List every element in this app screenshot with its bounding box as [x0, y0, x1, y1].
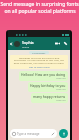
staticText: Send message in surprising fonts — [0, 1, 79, 8]
button[interactable]: Messages and calls are end-to-end encryp… — [13, 56, 65, 68]
button[interactable]: Send voice message — [59, 129, 68, 138]
button[interactable]: Video call — [55, 41, 60, 46]
staticText: 10:26 AM — [56, 99, 66, 102]
staticText: on all popular social platforms — [4, 8, 76, 15]
staticText: 14 JANUARY — [32, 51, 46, 54]
button[interactable]: Happy birthday to you — [30, 83, 66, 91]
other: Attach — [51, 132, 55, 136]
staticText: Happy birthday to you — [30, 83, 66, 88]
staticText: 10:25 AM — [56, 77, 66, 80]
staticText: Messages and calls are end-to-end encryp… — [13, 56, 65, 65]
staticText: many happy returns — [33, 94, 66, 99]
button[interactable]: Call — [63, 41, 68, 46]
staticText: Hellooo! How are you doing — [21, 72, 66, 77]
button[interactable]: Type a message — [12, 129, 55, 138]
staticText: Type a message — [17, 132, 40, 136]
button[interactable]: many happy returns — [33, 94, 66, 102]
staticText: Tap to learn more — [29, 65, 50, 68]
staticText: 10:26 AM — [56, 88, 66, 91]
button[interactable]: Hellooo! How are you doing — [21, 72, 66, 80]
button[interactable]: Back — [9, 42, 13, 46]
staticText: Sophia — [22, 40, 34, 45]
staticText: online — [22, 45, 29, 48]
